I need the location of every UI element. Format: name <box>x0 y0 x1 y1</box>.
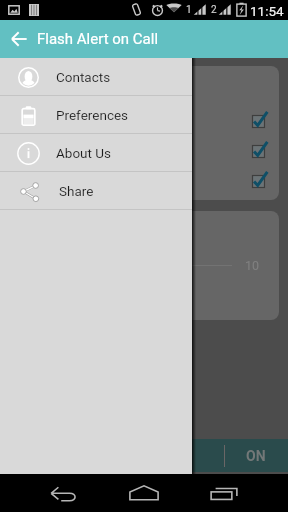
staticText: Flash Alert on Call <box>37 30 159 48</box>
staticText: 11:54 <box>250 3 284 19</box>
button[interactable]: About Us <box>0 134 192 171</box>
button[interactable]: Contacts <box>0 58 192 95</box>
button[interactable]: Preferences <box>0 96 192 133</box>
staticText: Share <box>59 183 94 199</box>
staticText: ON <box>246 448 266 464</box>
staticText: About Us <box>56 145 112 161</box>
button[interactable]: Recent apps <box>194 474 254 512</box>
button[interactable]: Home <box>114 474 174 512</box>
staticText: Contacts <box>56 69 111 85</box>
staticText: 1 <box>186 4 192 16</box>
staticText: 2 <box>211 4 217 16</box>
button[interactable]: Share <box>0 172 192 209</box>
staticText: 10 <box>245 258 260 273</box>
button[interactable]: Back <box>34 474 94 512</box>
button[interactable]: ON <box>224 439 288 472</box>
staticText: Preferences <box>56 107 129 123</box>
button[interactable]: Back <box>5 20 33 58</box>
